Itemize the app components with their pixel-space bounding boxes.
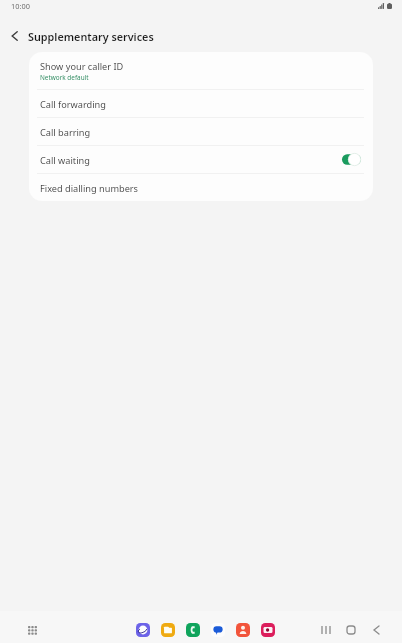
button[interactable]: Show your caller ID (29, 52, 373, 89)
button[interactable]: Navigate up (4, 25, 26, 47)
button[interactable]: Home (343, 622, 359, 638)
button[interactable]: My Files (161, 623, 175, 637)
button[interactable]: Messages (211, 623, 225, 637)
staticText: Show your caller ID (40, 60, 124, 73)
staticText: Call waiting (40, 154, 90, 167)
button[interactable]: All apps (24, 622, 40, 638)
staticText: Call forwarding (40, 98, 106, 111)
button[interactable]: Camera (261, 623, 275, 637)
button[interactable]: Call waiting (29, 146, 373, 173)
button[interactable]: Contacts (236, 623, 250, 637)
staticText: 10:00 (11, 1, 30, 11)
staticText: Fixed dialling numbers (40, 182, 139, 195)
button[interactable]: Call barring (29, 118, 373, 145)
button[interactable]: Back (368, 622, 384, 638)
button[interactable]: Fixed dialling numbers (29, 174, 373, 201)
button[interactable]: Internet (136, 623, 150, 637)
button[interactable]: Phone (186, 623, 200, 637)
button[interactable]: Call forwarding (29, 90, 373, 117)
staticText: Network default (40, 73, 89, 82)
button[interactable]: Recent apps (318, 622, 334, 638)
staticText: Supplementary services (28, 29, 154, 44)
staticText: Call barring (40, 126, 91, 139)
